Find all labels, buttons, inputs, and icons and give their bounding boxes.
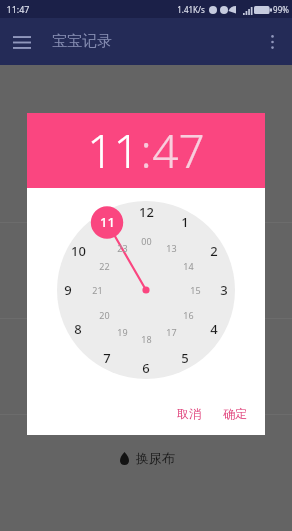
staticText: 换尿布 [136,450,175,466]
staticText: 16 [183,309,194,321]
staticText: 19 [117,326,128,338]
staticText: 4 [210,320,218,338]
button[interactable]: 47 [152,119,205,182]
button[interactable]: 换尿布 [114,446,179,470]
staticText: 宝宝记录 [52,32,112,51]
staticText: 2 [210,242,218,260]
staticText: 7 [103,349,111,367]
staticText: 11 [100,213,115,231]
staticText: 5 [181,349,189,367]
staticText: 47 [152,119,205,182]
staticText: 18 [141,333,152,345]
staticText: 23 [117,242,128,254]
staticText: 8 [74,320,82,338]
button[interactable]: Menu [5,25,39,59]
staticText: 20 [99,309,110,321]
staticText: 15 [190,284,201,296]
staticText: 17 [166,326,177,338]
button[interactable]: 取消 [169,400,209,427]
staticText: 12 [139,203,154,221]
staticText: 13 [166,242,177,254]
button[interactable]: More options [258,28,286,56]
staticText: 取消 [177,406,201,421]
staticText: 10 [71,242,86,260]
staticText: 9 [64,281,72,299]
staticText: 1.41K/s [177,4,205,15]
staticText: 11:47 [6,3,30,15]
staticText: : [140,119,152,182]
staticText: 14 [183,260,194,272]
staticText: 1 [181,213,189,231]
staticText: 6 [142,359,150,377]
button[interactable]: 11 [87,119,140,182]
staticText: 22 [99,260,110,272]
staticText: 00 [141,235,152,247]
staticText: 3 [220,281,228,299]
button[interactable]: 确定 [215,400,255,427]
staticText: 21 [92,284,103,296]
staticText: 确定 [223,406,247,421]
staticText: 11 [87,119,140,182]
staticText: 99% [273,4,289,15]
